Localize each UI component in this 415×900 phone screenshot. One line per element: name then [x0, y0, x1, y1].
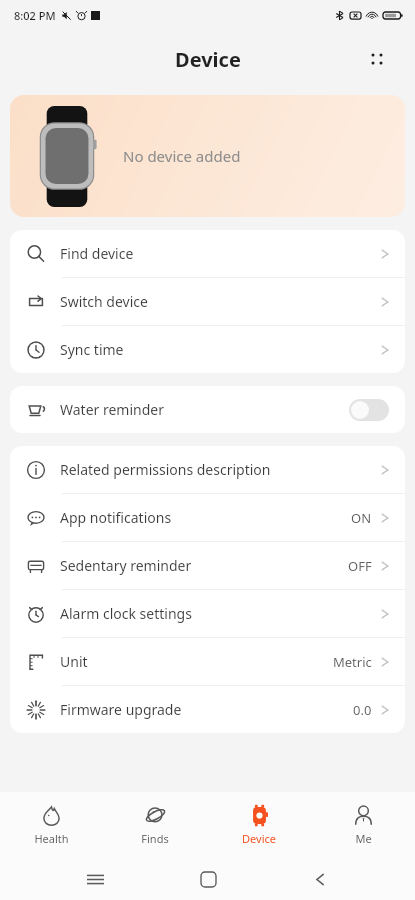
staticText: Health	[34, 831, 69, 846]
button[interactable]: Sedentary reminder	[10, 542, 405, 589]
button[interactable]: Water reminder	[10, 386, 405, 433]
staticText: Sedentary reminder	[60, 556, 192, 575]
button[interactable]: Find device	[10, 230, 405, 277]
staticText: Sync time	[60, 340, 124, 359]
staticText: Device	[242, 831, 276, 846]
staticText: Finds	[141, 831, 169, 846]
staticText: Device	[175, 46, 241, 73]
button[interactable]: Home	[191, 862, 225, 896]
staticText: Firmware upgrade	[60, 700, 182, 719]
staticText: OFF	[348, 557, 372, 575]
staticText: Find device	[60, 244, 134, 263]
button[interactable]: Back	[303, 862, 337, 896]
button[interactable]: Related permissions description	[10, 446, 405, 493]
button[interactable]: Switch device	[10, 278, 405, 325]
button[interactable]: Unit	[10, 638, 405, 685]
button[interactable]: Health	[0, 792, 103, 858]
button[interactable]: Alarm clock settings	[10, 590, 405, 637]
button[interactable]: Recent apps	[78, 862, 112, 896]
staticText: Me	[355, 831, 372, 846]
staticText: Unit	[60, 652, 88, 671]
button[interactable]: Me	[311, 792, 415, 858]
staticText: 0.0	[353, 701, 372, 719]
staticText: Metric	[333, 653, 372, 671]
staticText: Alarm clock settings	[60, 604, 192, 623]
staticText: ON	[351, 509, 372, 527]
staticText: No device added	[123, 146, 241, 166]
staticText: Water reminder	[60, 400, 165, 419]
button[interactable]: Sync time	[10, 326, 405, 373]
button[interactable]: More options	[359, 41, 395, 77]
staticText: Switch device	[60, 292, 148, 311]
button[interactable]: Finds	[103, 792, 207, 858]
button[interactable]: Firmware upgrade	[10, 686, 405, 733]
button[interactable]: App notifications	[10, 494, 405, 541]
button[interactable]: Water reminder toggle	[349, 399, 389, 421]
button[interactable]: Device	[207, 792, 311, 858]
staticText: 8:02 PM	[14, 8, 56, 23]
staticText: Related permissions description	[60, 460, 271, 479]
staticText: App notifications	[60, 508, 172, 527]
button[interactable]: No device added	[10, 95, 405, 217]
